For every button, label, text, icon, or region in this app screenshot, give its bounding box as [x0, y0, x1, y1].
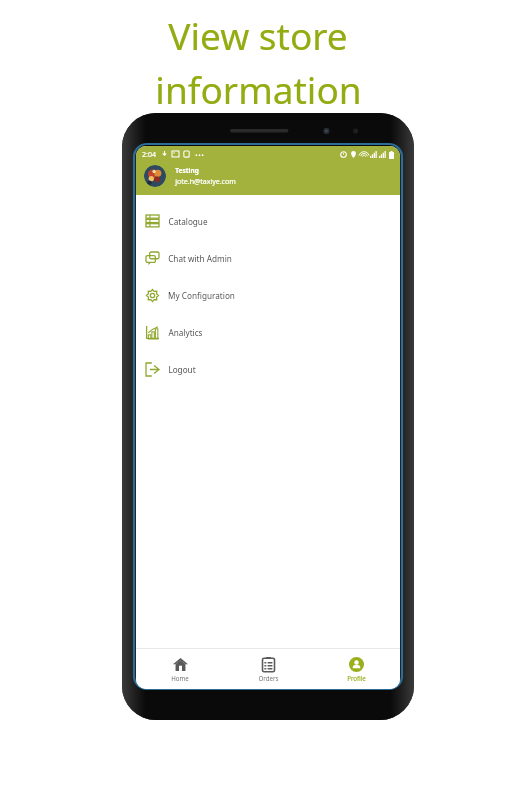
staticText: Profile	[347, 674, 366, 682]
staticText: View store	[168, 10, 348, 60]
button[interactable]: Logout	[136, 351, 400, 388]
staticText: jote.h@taxiye.com	[175, 177, 236, 187]
button[interactable]: Profile	[312, 649, 400, 689]
button[interactable]: Home	[136, 649, 224, 689]
button[interactable]: Analytics	[136, 314, 400, 351]
staticText: Testing	[175, 166, 199, 175]
staticText: My Configuration	[168, 290, 235, 301]
staticText: Catalogue	[168, 216, 208, 227]
staticText: Analytics	[168, 327, 203, 338]
staticText: information	[155, 64, 362, 114]
staticText: 2:04	[142, 150, 156, 160]
button[interactable]: Chat with Admin	[136, 240, 400, 277]
staticText: Home	[171, 674, 189, 682]
staticText: Orders	[258, 674, 279, 682]
button[interactable]: My Configuration	[136, 277, 400, 314]
staticText: Logout	[168, 364, 196, 375]
staticText: Chat with Admin	[168, 253, 232, 264]
button[interactable]: Orders	[224, 649, 312, 689]
button[interactable]: Catalogue	[136, 203, 400, 240]
